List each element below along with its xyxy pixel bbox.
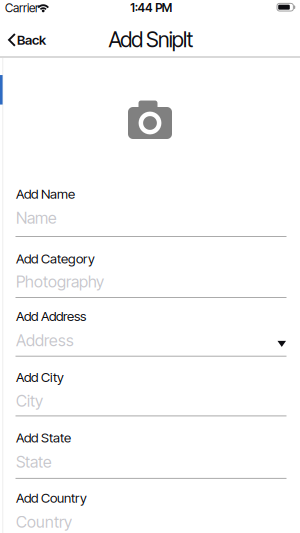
button[interactable]: State — [0, 452, 300, 472]
staticText: Address — [16, 331, 74, 350]
button[interactable]: Photography — [0, 272, 300, 292]
button[interactable] — [120, 93, 180, 147]
staticText: Add Name — [16, 186, 75, 202]
staticText: Add Country — [16, 490, 87, 506]
staticText: Back — [17, 32, 46, 48]
button[interactable]: Name — [0, 208, 300, 228]
staticText: 1:44 PM — [130, 0, 172, 15]
staticText: Add Address — [16, 308, 86, 324]
staticText: Add Category — [16, 251, 95, 266]
button[interactable]: Back — [0, 25, 56, 55]
staticText: Country — [16, 513, 72, 531]
staticText: Photography — [16, 272, 104, 291]
staticText: Add State — [16, 430, 71, 445]
staticText: City — [16, 392, 43, 410]
button[interactable]: Country — [0, 512, 300, 532]
staticText: Name — [16, 209, 57, 227]
button[interactable]: City — [0, 391, 300, 411]
button[interactable]: Address — [0, 330, 300, 350]
staticText: State — [16, 453, 52, 471]
staticText: Add SnipIt — [108, 27, 193, 52]
staticText: Carrier — [5, 1, 39, 15]
staticText: Add City — [16, 369, 64, 385]
button[interactable] — [276, 339, 288, 349]
